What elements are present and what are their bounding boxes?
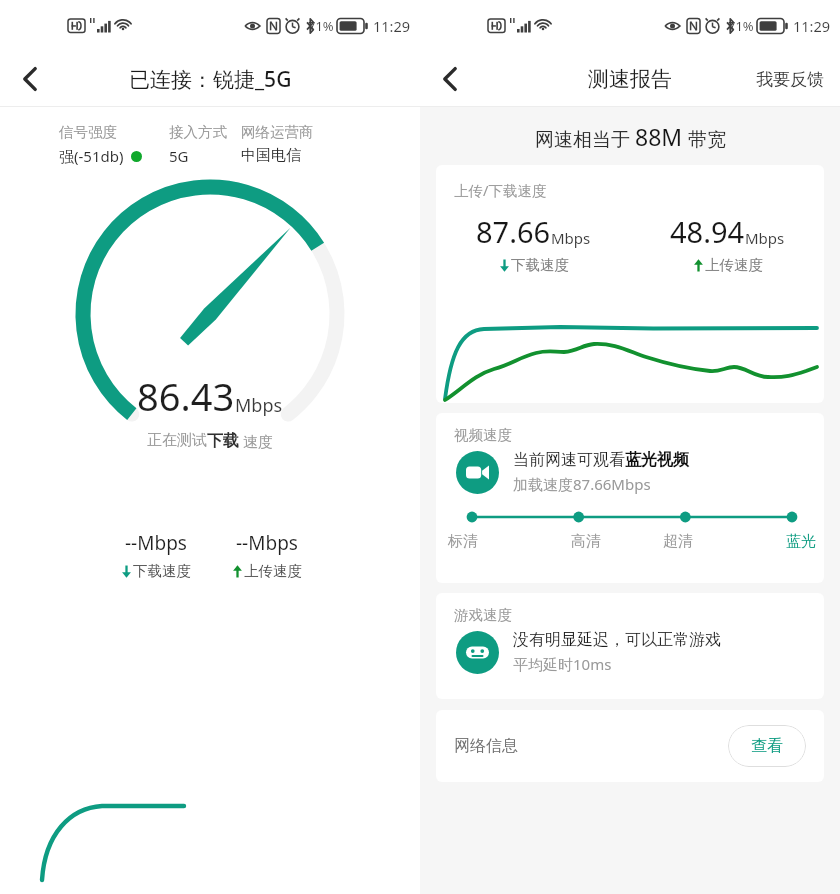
- button[interactable]: 超清: [632, 532, 724, 551]
- button[interactable]: 高清: [540, 532, 632, 551]
- staticText: 71%: [728, 17, 754, 35]
- button[interactable]: Back: [2, 52, 58, 106]
- staticText: 标清: [448, 532, 478, 551]
- staticText: 11:29: [793, 16, 831, 36]
- staticText: 正在测试: [147, 431, 207, 450]
- staticText: 88M: [635, 121, 683, 152]
- button[interactable]: 我要反馈: [750, 61, 830, 98]
- staticText: 当前网速可观看: [513, 450, 625, 470]
- staticText: 我要反馈: [756, 69, 824, 90]
- staticText: 加载速度87.66Mbps: [513, 474, 651, 494]
- staticText: 游戏速度: [454, 606, 512, 624]
- staticText: Mbps: [551, 228, 591, 248]
- staticText: 86.43: [137, 370, 235, 422]
- staticText: 网络运营商: [241, 123, 314, 141]
- staticText: 高清: [571, 532, 601, 551]
- staticText: 蓝光: [786, 532, 816, 551]
- staticText: 5G: [169, 146, 189, 166]
- staticText: --Mbps: [236, 530, 298, 556]
- staticText: 48.94: [670, 212, 745, 251]
- staticText: 已连接：锐捷_5G: [129, 65, 292, 94]
- staticText: 上传/下载速度: [454, 180, 547, 200]
- staticText: 超清: [663, 532, 693, 551]
- staticText: 上传速度: [705, 256, 763, 274]
- staticText: 上传速度: [244, 562, 302, 580]
- staticText: 没有明显延迟，可以正常游戏: [513, 630, 721, 650]
- staticText: 中国电信: [241, 146, 301, 165]
- staticText: Mbps: [745, 228, 785, 248]
- staticText: 蓝光视频: [625, 450, 689, 470]
- button[interactable]: 蓝光: [724, 532, 816, 551]
- staticText: 下载速度: [511, 256, 569, 274]
- staticText: 信号强度: [59, 123, 117, 141]
- staticText: 接入方式: [169, 123, 227, 141]
- staticText: 视频速度: [454, 426, 512, 444]
- staticText: 网速相当于: [535, 126, 635, 152]
- staticText: 11:29: [373, 16, 411, 36]
- staticText: 速度: [239, 431, 273, 451]
- staticText: Mbps: [235, 393, 283, 418]
- staticText: 71%: [308, 17, 334, 35]
- staticText: 87.66: [476, 212, 551, 251]
- staticText: --Mbps: [125, 530, 187, 556]
- button[interactable]: 标清: [448, 532, 540, 551]
- staticText: 平均延时10ms: [513, 654, 612, 674]
- staticText: 查看: [751, 736, 783, 756]
- staticText: 下载速度: [133, 562, 191, 580]
- staticText: 带宽: [683, 126, 726, 152]
- staticText: 测速报告: [588, 66, 672, 92]
- staticText: 下载: [207, 431, 239, 451]
- button[interactable]: Back: [422, 52, 478, 106]
- button[interactable]: 查看: [728, 725, 806, 767]
- staticText: 强(-51db): [59, 146, 124, 166]
- staticText: 网络信息: [454, 736, 518, 756]
